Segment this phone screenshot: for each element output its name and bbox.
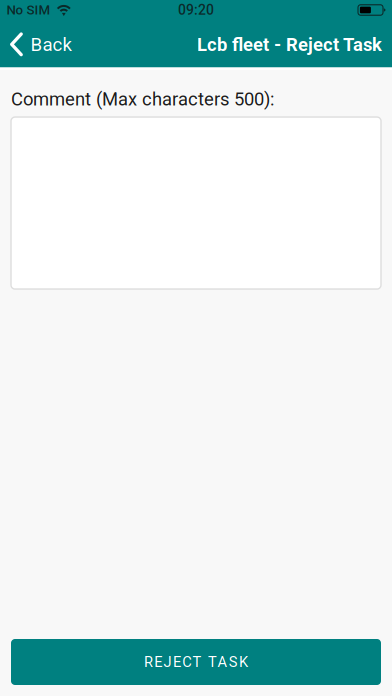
staticText: Comment (Max characters 500): xyxy=(11,88,274,110)
staticText: Back xyxy=(30,34,71,55)
staticText: REJECT TASK xyxy=(144,653,248,671)
staticText: No SIM xyxy=(6,2,50,18)
staticText: 09:20 xyxy=(178,2,214,18)
button[interactable]: REJECT TASK xyxy=(11,639,381,685)
staticText: Lcb fleet - Reject Task xyxy=(197,34,382,56)
button[interactable]: Back xyxy=(0,21,81,67)
